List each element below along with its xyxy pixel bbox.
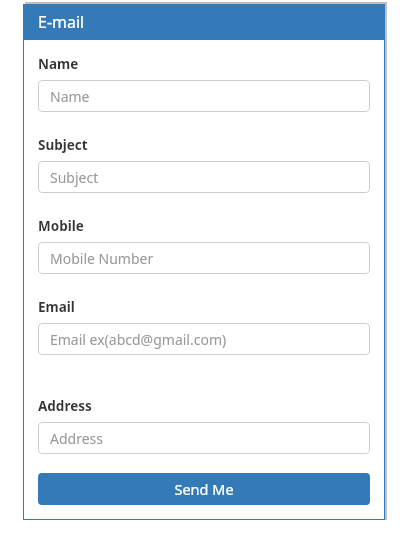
- staticText: Subject: [38, 136, 88, 154]
- button[interactable]: Address: [38, 422, 370, 454]
- staticText: Send Me: [174, 479, 234, 499]
- staticText: Email: [38, 298, 75, 316]
- staticText: Name: [50, 87, 90, 106]
- staticText: Address: [50, 429, 103, 448]
- staticText: Mobile Number: [50, 249, 154, 268]
- button[interactable]: Subject: [38, 161, 370, 193]
- staticText: Subject: [50, 168, 99, 187]
- staticText: E-mail: [38, 11, 85, 33]
- button[interactable]: Send Me: [38, 473, 370, 505]
- staticText: Email ex(abcd@gmail.com): [50, 330, 227, 349]
- button[interactable]: Email ex(abcd@gmail.com): [38, 323, 370, 355]
- staticText: Name: [38, 55, 79, 73]
- staticText: Mobile: [38, 217, 84, 235]
- button[interactable]: Name: [38, 80, 370, 112]
- staticText: Address: [38, 397, 92, 415]
- button[interactable]: Mobile Number: [38, 242, 370, 274]
